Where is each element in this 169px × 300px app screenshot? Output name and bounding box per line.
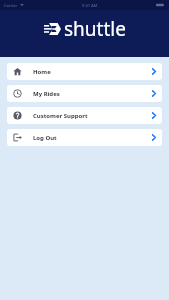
staticText: shuttle [64, 16, 126, 42]
button[interactable]: My Rides [7, 85, 162, 102]
button[interactable]: Home [7, 63, 162, 80]
button[interactable]: Log Out [7, 129, 162, 146]
button[interactable]: Customer Support [7, 107, 162, 124]
staticText: Home [33, 68, 51, 76]
staticText: Carrier [4, 3, 18, 8]
staticText: My Rides [33, 90, 60, 98]
staticText: Customer Support [33, 112, 88, 120]
staticText: 9:41 AM [82, 3, 98, 8]
staticText: Log Out [33, 134, 57, 142]
